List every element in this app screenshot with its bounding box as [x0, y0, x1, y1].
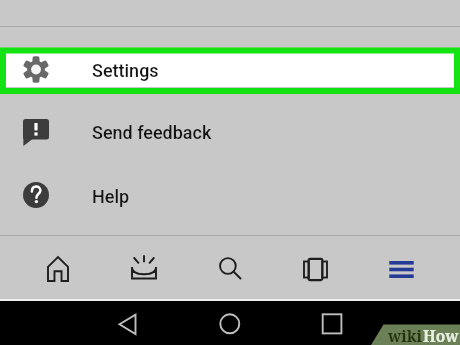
button[interactable]: Help [0, 175, 460, 215]
button[interactable]: Menu [359, 239, 445, 299]
button[interactable]: Subscriptions [101, 239, 187, 299]
staticText: Send feedback [92, 122, 212, 143]
button[interactable]: Home [212, 301, 247, 345]
button[interactable]: Recent apps [314, 301, 349, 345]
button[interactable]: Home [15, 239, 101, 299]
staticText: wiki [388, 325, 423, 345]
button[interactable]: Search [187, 239, 273, 299]
button[interactable]: Back [110, 301, 145, 345]
button[interactable]: Send feedback [0, 112, 460, 152]
staticText: Help [92, 186, 130, 207]
button[interactable]: Library [273, 239, 359, 299]
staticText: How [423, 325, 459, 345]
staticText: Settings [92, 60, 159, 81]
button[interactable]: Settings [0, 50, 460, 90]
